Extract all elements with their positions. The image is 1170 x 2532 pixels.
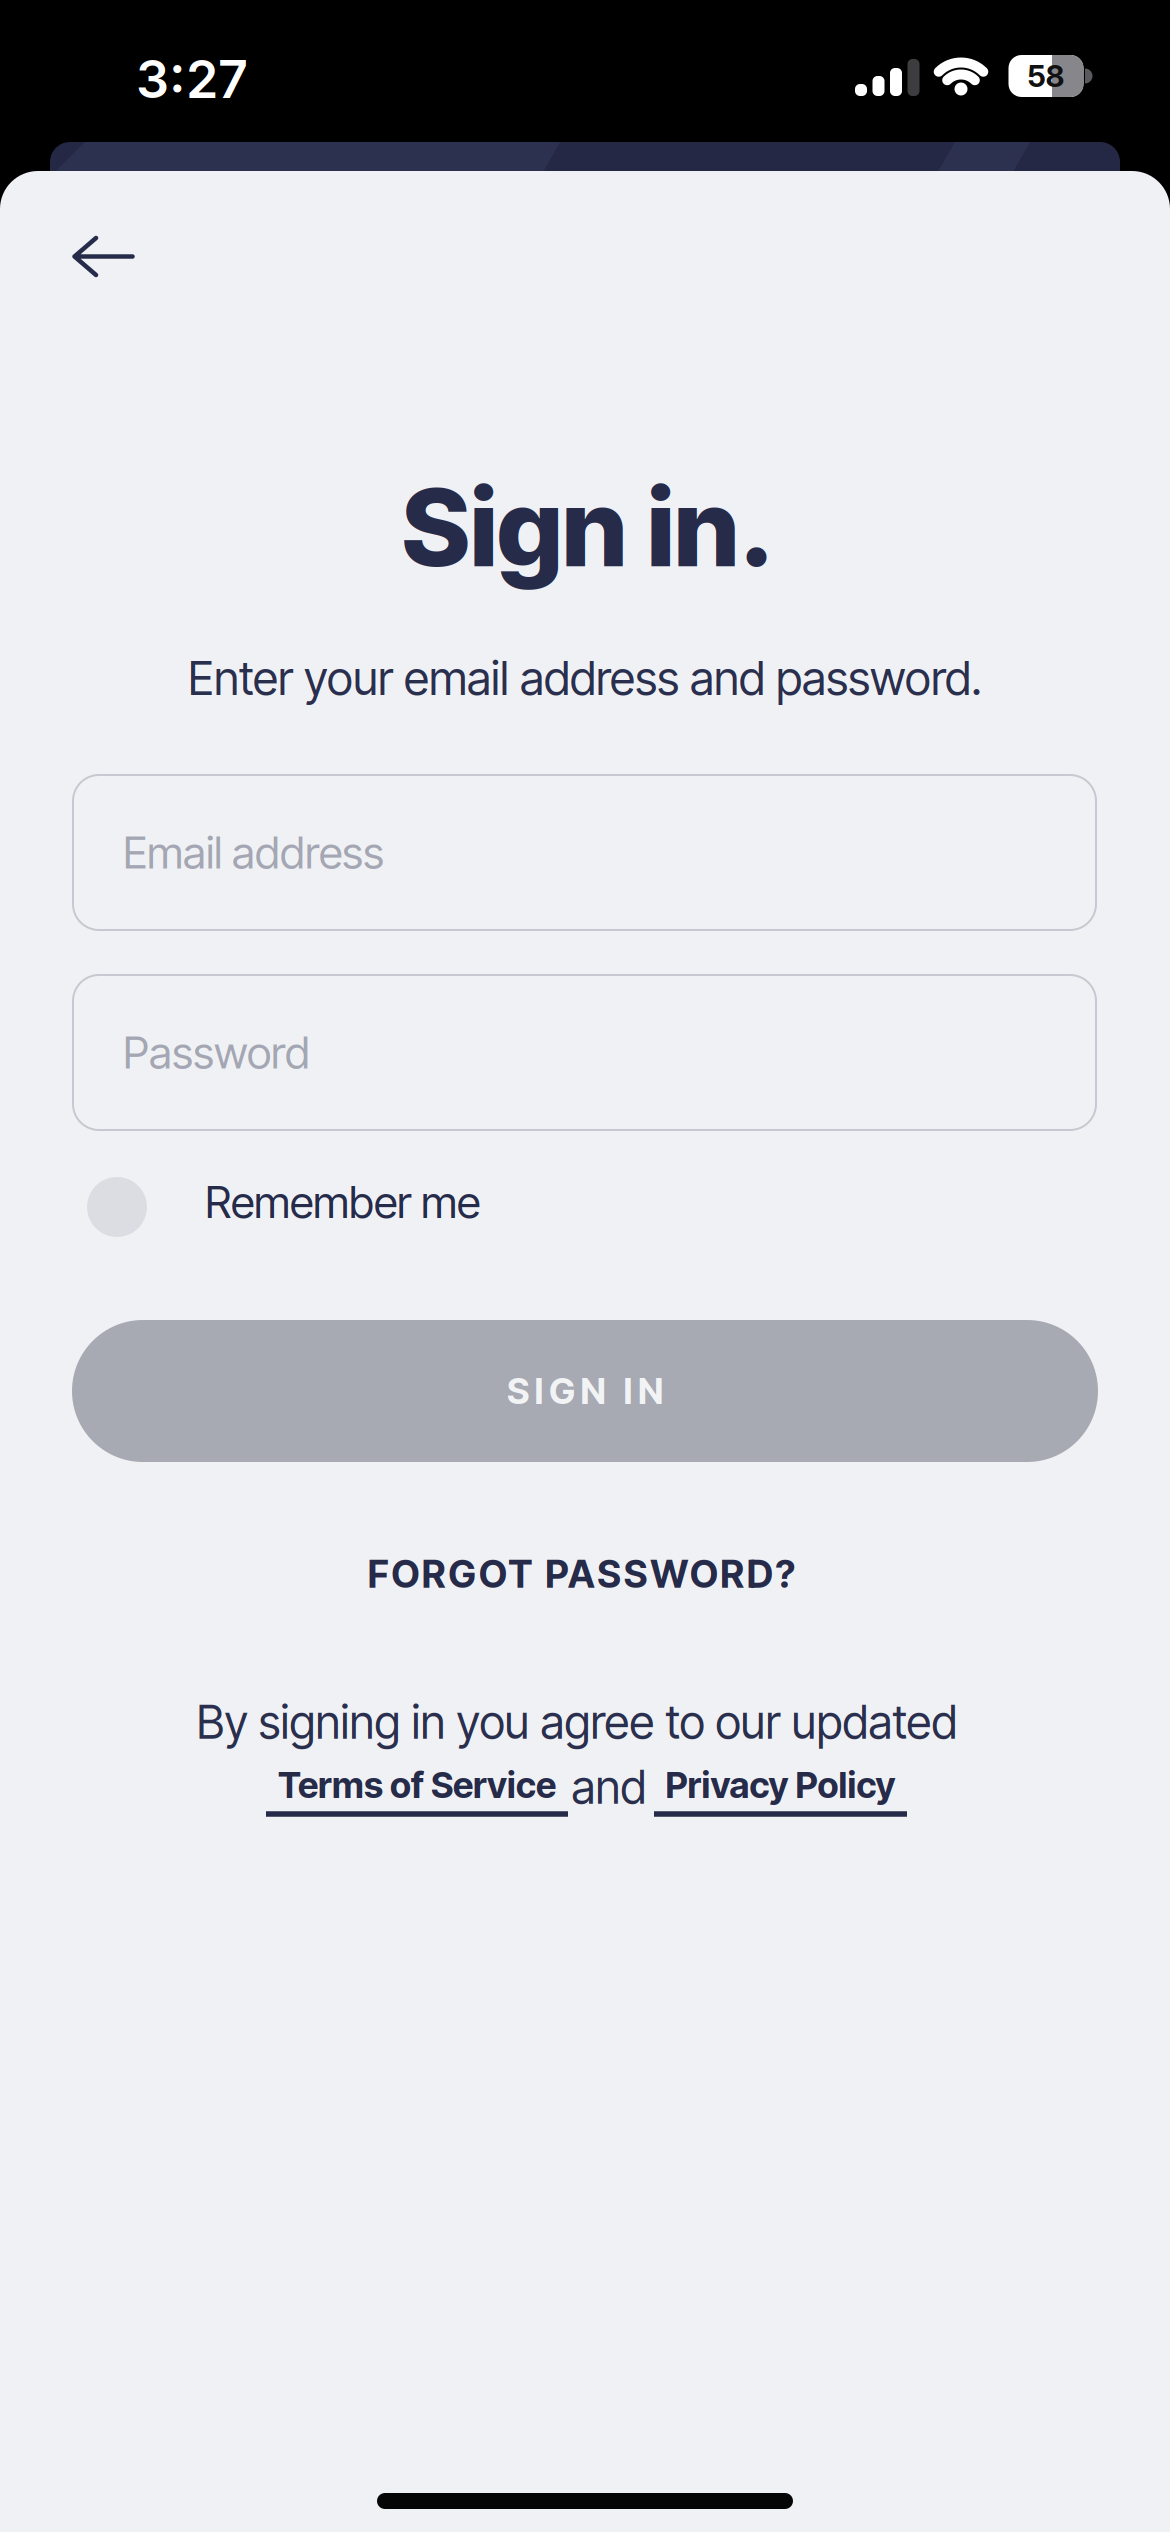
staticText: Sign in.	[402, 462, 774, 592]
staticText: Remember me	[205, 1175, 480, 1229]
staticText: Password	[123, 1026, 310, 1079]
staticText: and	[571, 1759, 646, 1815]
button[interactable]: Terms of Service	[262, 1764, 572, 1822]
button[interactable]: Password	[72, 974, 1097, 1131]
button[interactable]: SIGN IN	[72, 1320, 1098, 1462]
staticText: 58	[1027, 58, 1064, 94]
button[interactable]: Remember me	[87, 1177, 480, 1237]
staticText: Enter your email address and password.	[188, 650, 982, 706]
staticText: FORGOT PASSWORD?	[368, 1551, 795, 1597]
button[interactable]: Privacy Policy	[650, 1764, 910, 1822]
staticText: SIGN IN	[507, 1369, 663, 1413]
staticText: Email address	[123, 826, 384, 879]
button[interactable]: Email address	[72, 774, 1097, 931]
button[interactable]: Back	[53, 216, 153, 296]
staticText: Terms of Service	[278, 1763, 556, 1807]
staticText: 3:27	[136, 47, 248, 110]
staticText: By signing in you agree to our updated	[196, 1694, 957, 1750]
button[interactable]: FORGOT PASSWORD?	[368, 1551, 795, 1597]
staticText: Privacy Policy	[665, 1763, 895, 1807]
